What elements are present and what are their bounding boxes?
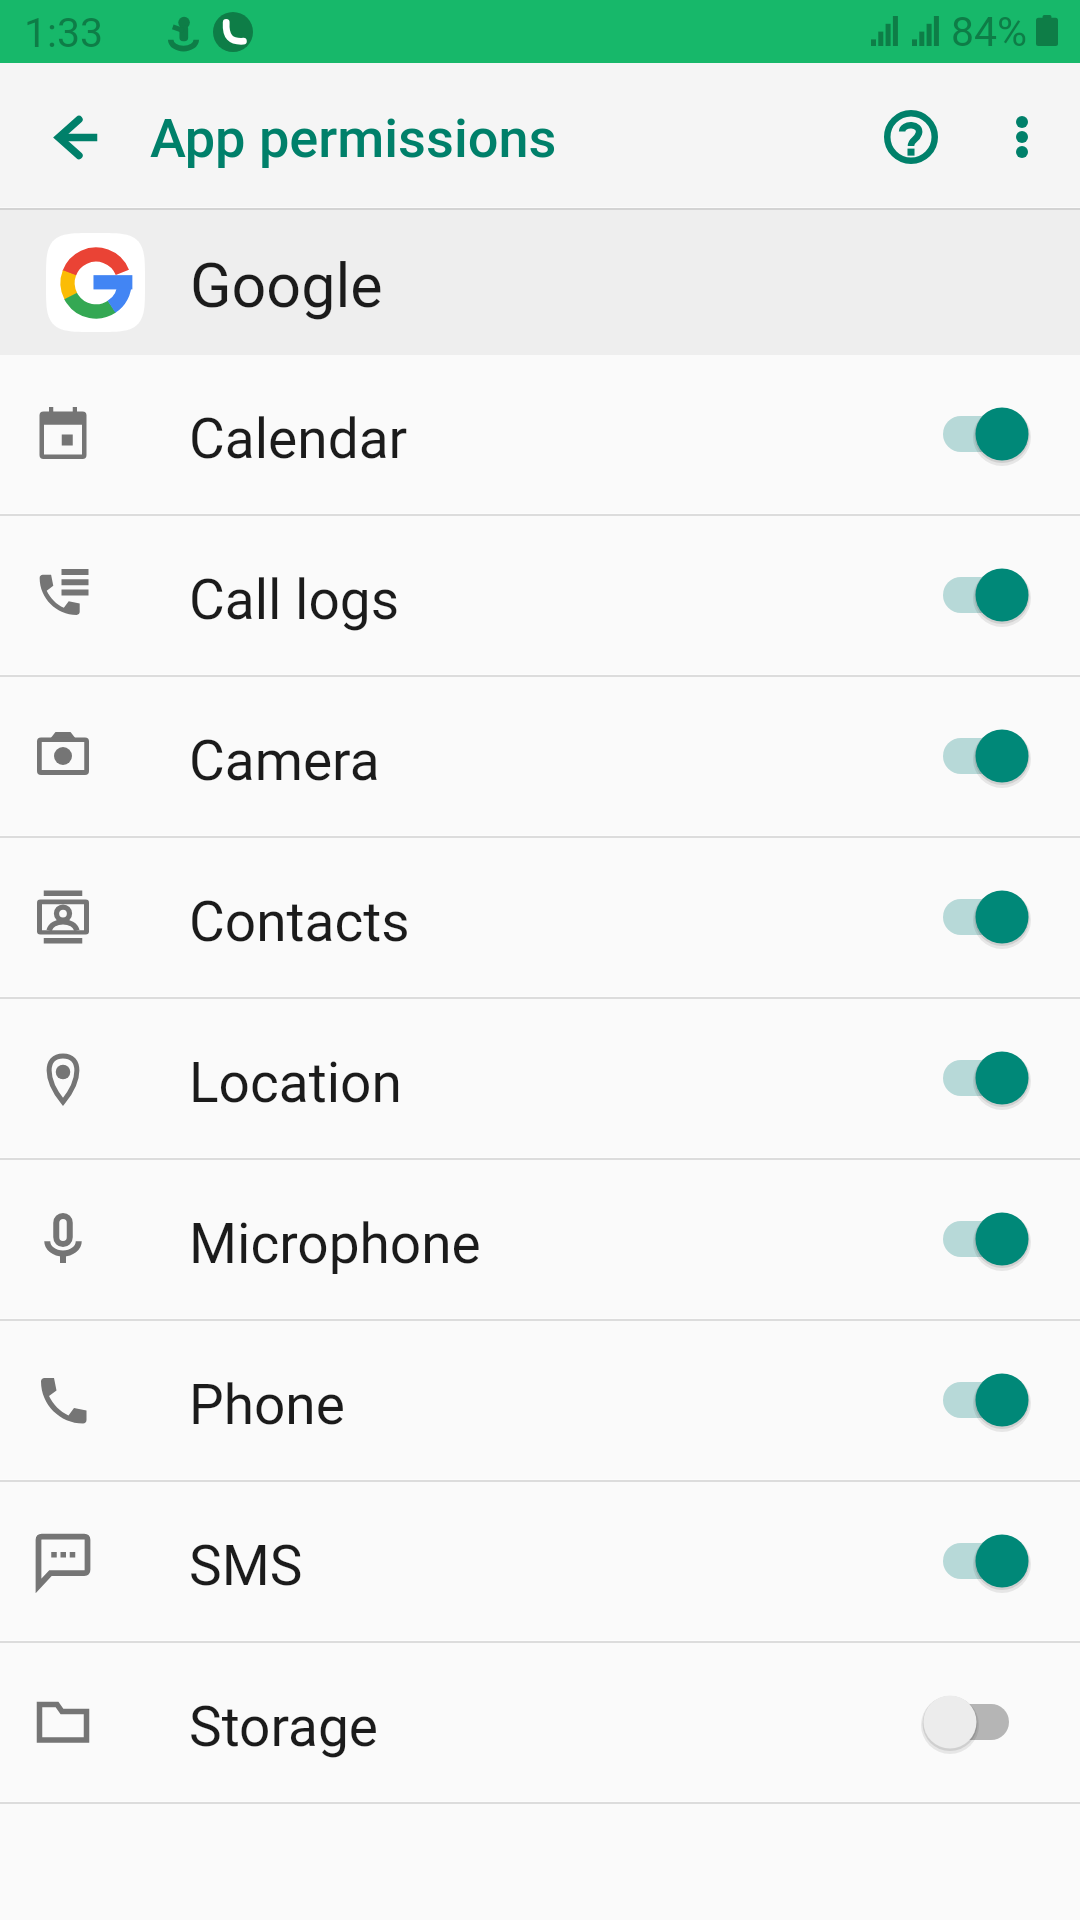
staticText: Microphone	[189, 1212, 481, 1276]
staticText: Phone	[189, 1373, 345, 1437]
staticText: Storage	[189, 1695, 379, 1759]
staticText: Contacts	[189, 890, 410, 954]
button[interactable]: Help	[851, 77, 970, 196]
button[interactable]: SMS	[0, 1482, 1080, 1643]
staticText: 84%	[951, 8, 1028, 54]
staticText: Google	[190, 250, 383, 321]
button[interactable]: Back	[33, 92, 123, 182]
staticText: Calendar	[189, 407, 408, 471]
button[interactable]: Contacts	[0, 838, 1080, 999]
button[interactable]: Calendar	[0, 355, 1080, 516]
button[interactable]: Camera	[0, 677, 1080, 838]
staticText: App permissions	[150, 107, 557, 170]
staticText: SMS	[189, 1534, 303, 1598]
button[interactable]: Call logs	[0, 516, 1080, 677]
staticText: Location	[189, 1051, 402, 1115]
button[interactable]: Microphone	[0, 1160, 1080, 1321]
button[interactable]: Location	[0, 999, 1080, 1160]
button[interactable]: Phone	[0, 1321, 1080, 1482]
staticText: Call logs	[189, 568, 400, 632]
button[interactable]: More options	[970, 85, 1074, 189]
staticText: 1:33	[24, 9, 104, 57]
staticText: Camera	[189, 729, 380, 793]
button[interactable]: Google	[0, 210, 1080, 355]
button[interactable]: Storage	[0, 1643, 1080, 1804]
